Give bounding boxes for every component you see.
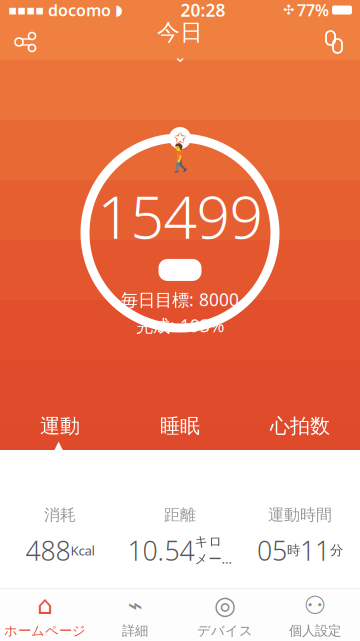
- button[interactable]: ⚇: [270, 589, 360, 641]
- staticText: ▪▪▪▪: [8, 2, 44, 17]
- staticText: デバイス: [197, 623, 253, 639]
- staticText: ▲: [53, 438, 64, 454]
- button[interactable]: Link device: [312, 22, 356, 62]
- staticText: 詳細: [122, 623, 148, 639]
- staticText: 05: [257, 533, 287, 568]
- staticText: 時: [287, 542, 300, 559]
- staticText: docomo: [48, 0, 111, 21]
- button[interactable]: ⌂: [0, 589, 90, 641]
- staticText: ⌄: [173, 47, 186, 65]
- staticText: 77%: [297, 0, 329, 21]
- staticText: ⌂: [37, 591, 53, 620]
- staticText: 488: [25, 533, 70, 568]
- staticText: 分: [330, 542, 343, 559]
- staticText: ⌁: [127, 591, 142, 620]
- staticText: ⚇: [303, 591, 326, 620]
- staticText: ◗: [115, 2, 123, 18]
- staticText: ホームページ: [4, 623, 86, 639]
- staticText: 距離: [164, 505, 196, 525]
- staticText: 15499: [97, 177, 262, 255]
- staticText: 運動: [40, 414, 80, 438]
- staticText: 10.54: [127, 533, 194, 568]
- staticText: Kcal: [70, 541, 94, 559]
- button[interactable]: ◎: [180, 589, 270, 641]
- button[interactable]: 睡眠: [120, 406, 240, 446]
- staticText: 睡眠: [160, 414, 200, 438]
- button[interactable]: ⌁: [90, 589, 180, 641]
- staticText: 毎日目標: 8000: [121, 288, 239, 311]
- staticText: 運動時間: [268, 505, 332, 525]
- staticText: 心拍数: [270, 414, 330, 438]
- button[interactable]: 運動: [0, 406, 120, 446]
- staticText: 個人設定: [289, 623, 341, 639]
- staticText: キロメー…: [194, 533, 232, 567]
- staticText: 完成: 193%: [136, 314, 224, 337]
- staticText: 20:28: [180, 0, 225, 21]
- staticText: 今日: [157, 18, 203, 46]
- staticText: ◎: [214, 591, 236, 620]
- staticText: 消耗: [44, 505, 76, 525]
- staticText: ✣: [283, 2, 294, 17]
- staticText: ✩: [173, 129, 186, 147]
- button[interactable]: Share: [4, 22, 48, 62]
- button[interactable]: 心拍数: [240, 406, 360, 446]
- staticText: 11: [300, 533, 330, 568]
- staticText: 🚶: [163, 143, 196, 173]
